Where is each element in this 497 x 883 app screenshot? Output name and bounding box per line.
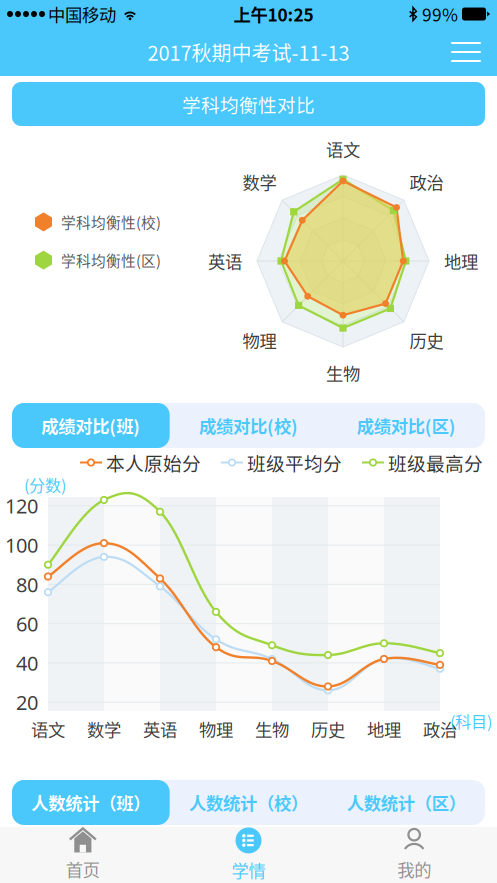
staticText: 120 <box>5 493 38 519</box>
staticText: 80 <box>16 571 38 598</box>
staticText: 政治 <box>423 716 457 742</box>
staticText: 99% <box>422 1 458 27</box>
button[interactable]: 首页 <box>0 827 166 883</box>
staticText: 数学 <box>243 169 277 194</box>
staticText: 班级最高分 <box>388 449 483 476</box>
staticText: 生物 <box>326 360 360 386</box>
staticText: 英语 <box>208 248 242 274</box>
staticText: 语文 <box>326 136 360 162</box>
staticText: 政治 <box>409 169 443 194</box>
staticText: 学科均衡性对比 <box>182 90 315 117</box>
staticText: 2017秋期中考试-11-13 <box>147 37 349 66</box>
button[interactable]: 菜单 <box>439 32 493 72</box>
staticText: 20 <box>16 689 38 715</box>
staticText: 英语 <box>143 716 177 742</box>
staticText: 60 <box>16 610 38 637</box>
staticText: 成绩对比(班) <box>41 413 140 438</box>
staticText: 学科均衡性(区) <box>61 249 161 271</box>
staticText: 班级平均分 <box>247 449 342 476</box>
staticText: 历史 <box>409 328 443 353</box>
staticText: (分数) <box>24 473 66 496</box>
staticText: 首页 <box>66 856 100 882</box>
staticText: 物理 <box>199 716 233 742</box>
staticText: 生物 <box>255 716 289 742</box>
staticText: 语文 <box>31 716 65 742</box>
button[interactable]: 人数统计（班） <box>12 780 170 825</box>
staticText: 人数统计（校） <box>189 790 308 815</box>
staticText: 本人原始分 <box>106 449 201 476</box>
button[interactable]: 学情 <box>166 827 331 883</box>
button[interactable]: 成绩对比(区) <box>327 403 485 448</box>
staticText: 历史 <box>311 716 345 742</box>
staticText: 地理 <box>367 716 401 742</box>
staticText: 物理 <box>243 328 277 353</box>
staticText: 中国移动 <box>48 1 116 27</box>
button[interactable]: 人数统计（区） <box>327 780 485 825</box>
button[interactable]: 我的 <box>331 827 497 883</box>
button[interactable]: 人数统计（校） <box>170 780 327 825</box>
button[interactable]: 成绩对比(班) <box>12 403 170 448</box>
staticText: 我的 <box>397 856 431 882</box>
staticText: 上午10:25 <box>233 1 313 27</box>
staticText: 学科均衡性(校) <box>61 211 161 232</box>
button[interactable]: 成绩对比(校) <box>170 403 327 448</box>
staticText: 人数统计（区） <box>347 790 466 815</box>
staticText: 学情 <box>231 857 265 883</box>
staticText: 地理 <box>444 248 478 274</box>
staticText: 40 <box>16 650 38 676</box>
staticText: (科目) <box>450 709 492 733</box>
staticText: 数学 <box>87 716 121 742</box>
staticText: 成绩对比(区) <box>357 413 456 438</box>
staticText: 人数统计（班） <box>31 790 150 815</box>
staticText: 成绩对比(校) <box>199 413 298 438</box>
staticText: 100 <box>5 532 38 558</box>
